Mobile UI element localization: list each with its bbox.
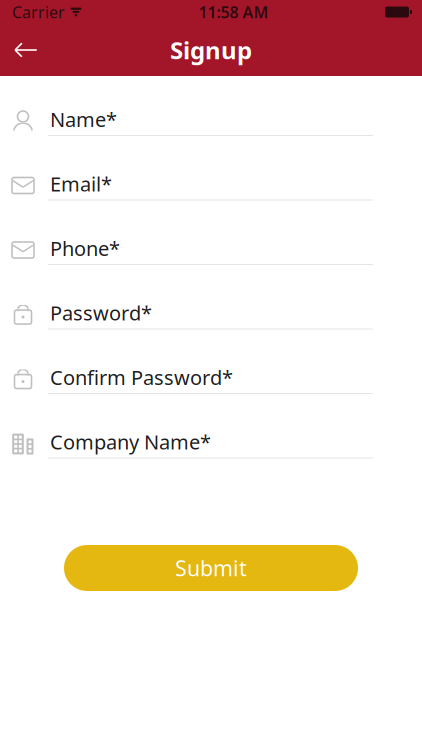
staticText: Confirm Password*: [50, 364, 233, 391]
button[interactable]: Company Name*: [0, 428, 422, 493]
button[interactable]: Back: [0, 24, 52, 76]
staticText: Phone*: [50, 235, 120, 262]
button[interactable]: Name*: [0, 106, 422, 170]
button[interactable]: Submit: [64, 545, 358, 591]
staticText: Password*: [50, 299, 152, 326]
button[interactable]: Email*: [0, 170, 422, 235]
staticText: Submit: [175, 554, 247, 582]
staticText: Company Name*: [50, 428, 211, 455]
button[interactable]: Phone*: [0, 235, 422, 299]
button[interactable]: Password*: [0, 299, 422, 364]
staticText: Name*: [50, 106, 117, 133]
staticText: Carrier: [12, 1, 65, 23]
staticText: Email*: [50, 170, 112, 197]
staticText: 11:58 AM: [198, 1, 268, 23]
staticText: Signup: [170, 34, 252, 66]
button[interactable]: Confirm Password*: [0, 364, 422, 428]
